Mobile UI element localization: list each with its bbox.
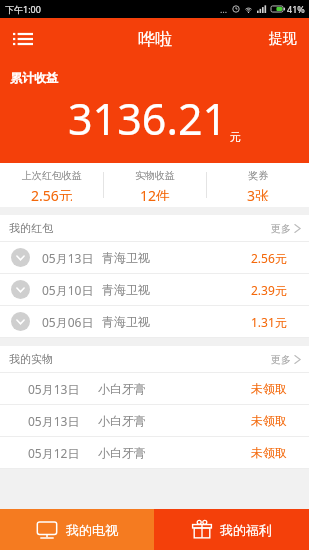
staticText: 小白牙膏 [98, 413, 146, 428]
button[interactable]: 我的福利 [154, 509, 309, 550]
staticText: 2.56元 [251, 250, 287, 266]
staticText: 青海卫视 [102, 314, 150, 329]
button[interactable]: 05月12日 [0, 437, 309, 468]
staticText: 更多 [271, 353, 291, 366]
button[interactable]: 05月13日 [0, 373, 309, 404]
staticText: 小白牙膏 [98, 445, 146, 460]
button[interactable]: 我的红包 [0, 215, 309, 241]
button[interactable]: 05月13日 [0, 242, 309, 273]
button[interactable]: 实物收益 [104, 163, 206, 207]
button[interactable]: 05月06日 [0, 306, 309, 337]
staticText: 05月10日 [42, 282, 94, 298]
staticText: 哗啦 [138, 29, 172, 50]
staticText: 1.31元 [251, 314, 287, 330]
button[interactable]: 提现 [257, 18, 309, 60]
button[interactable]: 05月13日 [0, 405, 309, 436]
button[interactable]: 奖券 [207, 163, 309, 207]
button[interactable]: 我的实物 [0, 346, 309, 372]
staticText: 05月13日 [28, 381, 80, 397]
staticText: … [220, 3, 228, 15]
button[interactable]: 05月10日 [0, 274, 309, 305]
staticText: 元 [230, 130, 241, 144]
staticText: 实物收益 [135, 169, 175, 182]
staticText: 青海卫视 [102, 282, 150, 297]
button[interactable]: Menu [6, 22, 40, 56]
staticText: 3136.21 [68, 89, 228, 148]
staticText: 05月13日 [42, 250, 94, 266]
staticText: 小白牙膏 [98, 381, 146, 396]
button[interactable]: 我的电视 [0, 509, 154, 550]
staticText: 未领取 [251, 445, 287, 460]
staticText: 05月13日 [28, 413, 80, 429]
staticText: 奖券 [248, 169, 268, 182]
staticText: 我的电视 [66, 522, 118, 538]
staticText: 05月12日 [28, 445, 80, 461]
staticText: 累计收益 [10, 70, 58, 85]
staticText: 2.56元 [31, 186, 73, 201]
staticText: 上次红包收益 [22, 169, 82, 182]
staticText: 我的福利 [220, 522, 272, 538]
staticText: 青海卫视 [102, 250, 150, 265]
staticText: 12件 [140, 186, 171, 201]
staticText: 提现 [269, 30, 297, 48]
staticText: 我的红包 [9, 221, 53, 235]
staticText: 未领取 [251, 413, 287, 428]
staticText: 2.39元 [251, 282, 287, 298]
button[interactable]: 上次红包收益 [0, 163, 103, 207]
staticText: 41% [287, 3, 305, 15]
staticText: 下午1:00 [5, 3, 41, 15]
staticText: 05月06日 [42, 314, 94, 330]
staticText: 未领取 [251, 381, 287, 396]
staticText: 我的实物 [9, 352, 53, 366]
staticText: 更多 [271, 222, 291, 235]
staticText: 3张 [247, 186, 270, 201]
